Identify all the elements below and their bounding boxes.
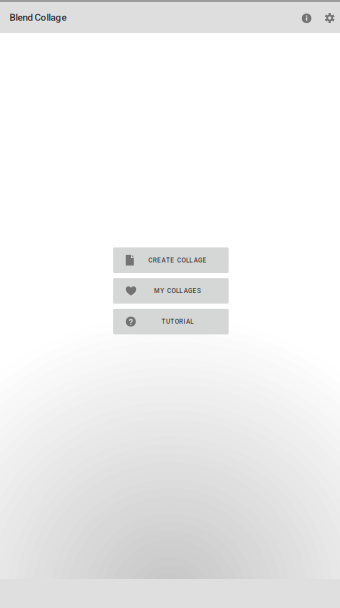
staticText: TUTORIAL xyxy=(161,318,193,325)
button[interactable]: TUTORIAL xyxy=(113,309,229,334)
staticText: MY COLLAGES xyxy=(154,287,201,295)
button[interactable]: CREATE COLLAGE xyxy=(113,247,229,273)
button[interactable]: Info xyxy=(295,2,319,32)
button[interactable]: Settings xyxy=(319,2,340,33)
staticText: Blend Collage xyxy=(10,12,67,23)
button[interactable]: MY COLLAGES xyxy=(113,278,229,304)
staticText: CREATE COLLAGE xyxy=(148,256,206,264)
